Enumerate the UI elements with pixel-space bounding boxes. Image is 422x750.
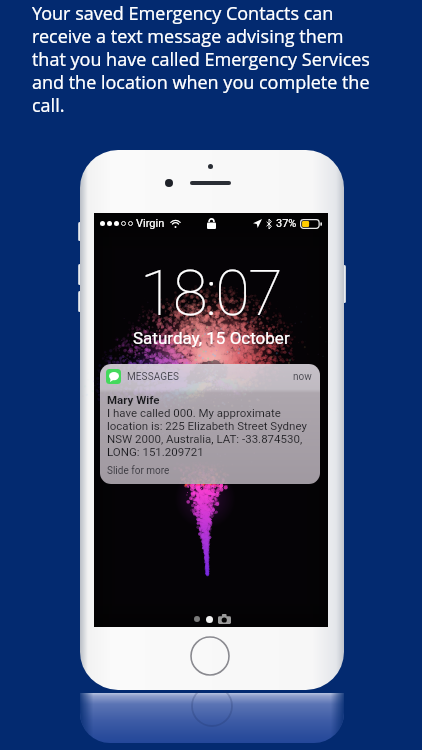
staticText: 37% — [276, 217, 297, 230]
staticText: Your saved Emergency Contacts can receiv… — [32, 1, 376, 117]
staticText: MESSAGES — [127, 371, 179, 383]
staticText: now — [293, 371, 312, 383]
staticText: Saturday, 15 October — [133, 328, 290, 348]
staticText: Virgin — [136, 217, 165, 230]
button[interactable]: MESSAGES — [100, 364, 320, 484]
staticText: Mary Wife — [107, 393, 160, 406]
staticText: Slide for more — [107, 465, 170, 477]
staticText: 18:07 — [140, 257, 282, 331]
staticText: I have called 000. My approximate locati… — [107, 406, 313, 458]
